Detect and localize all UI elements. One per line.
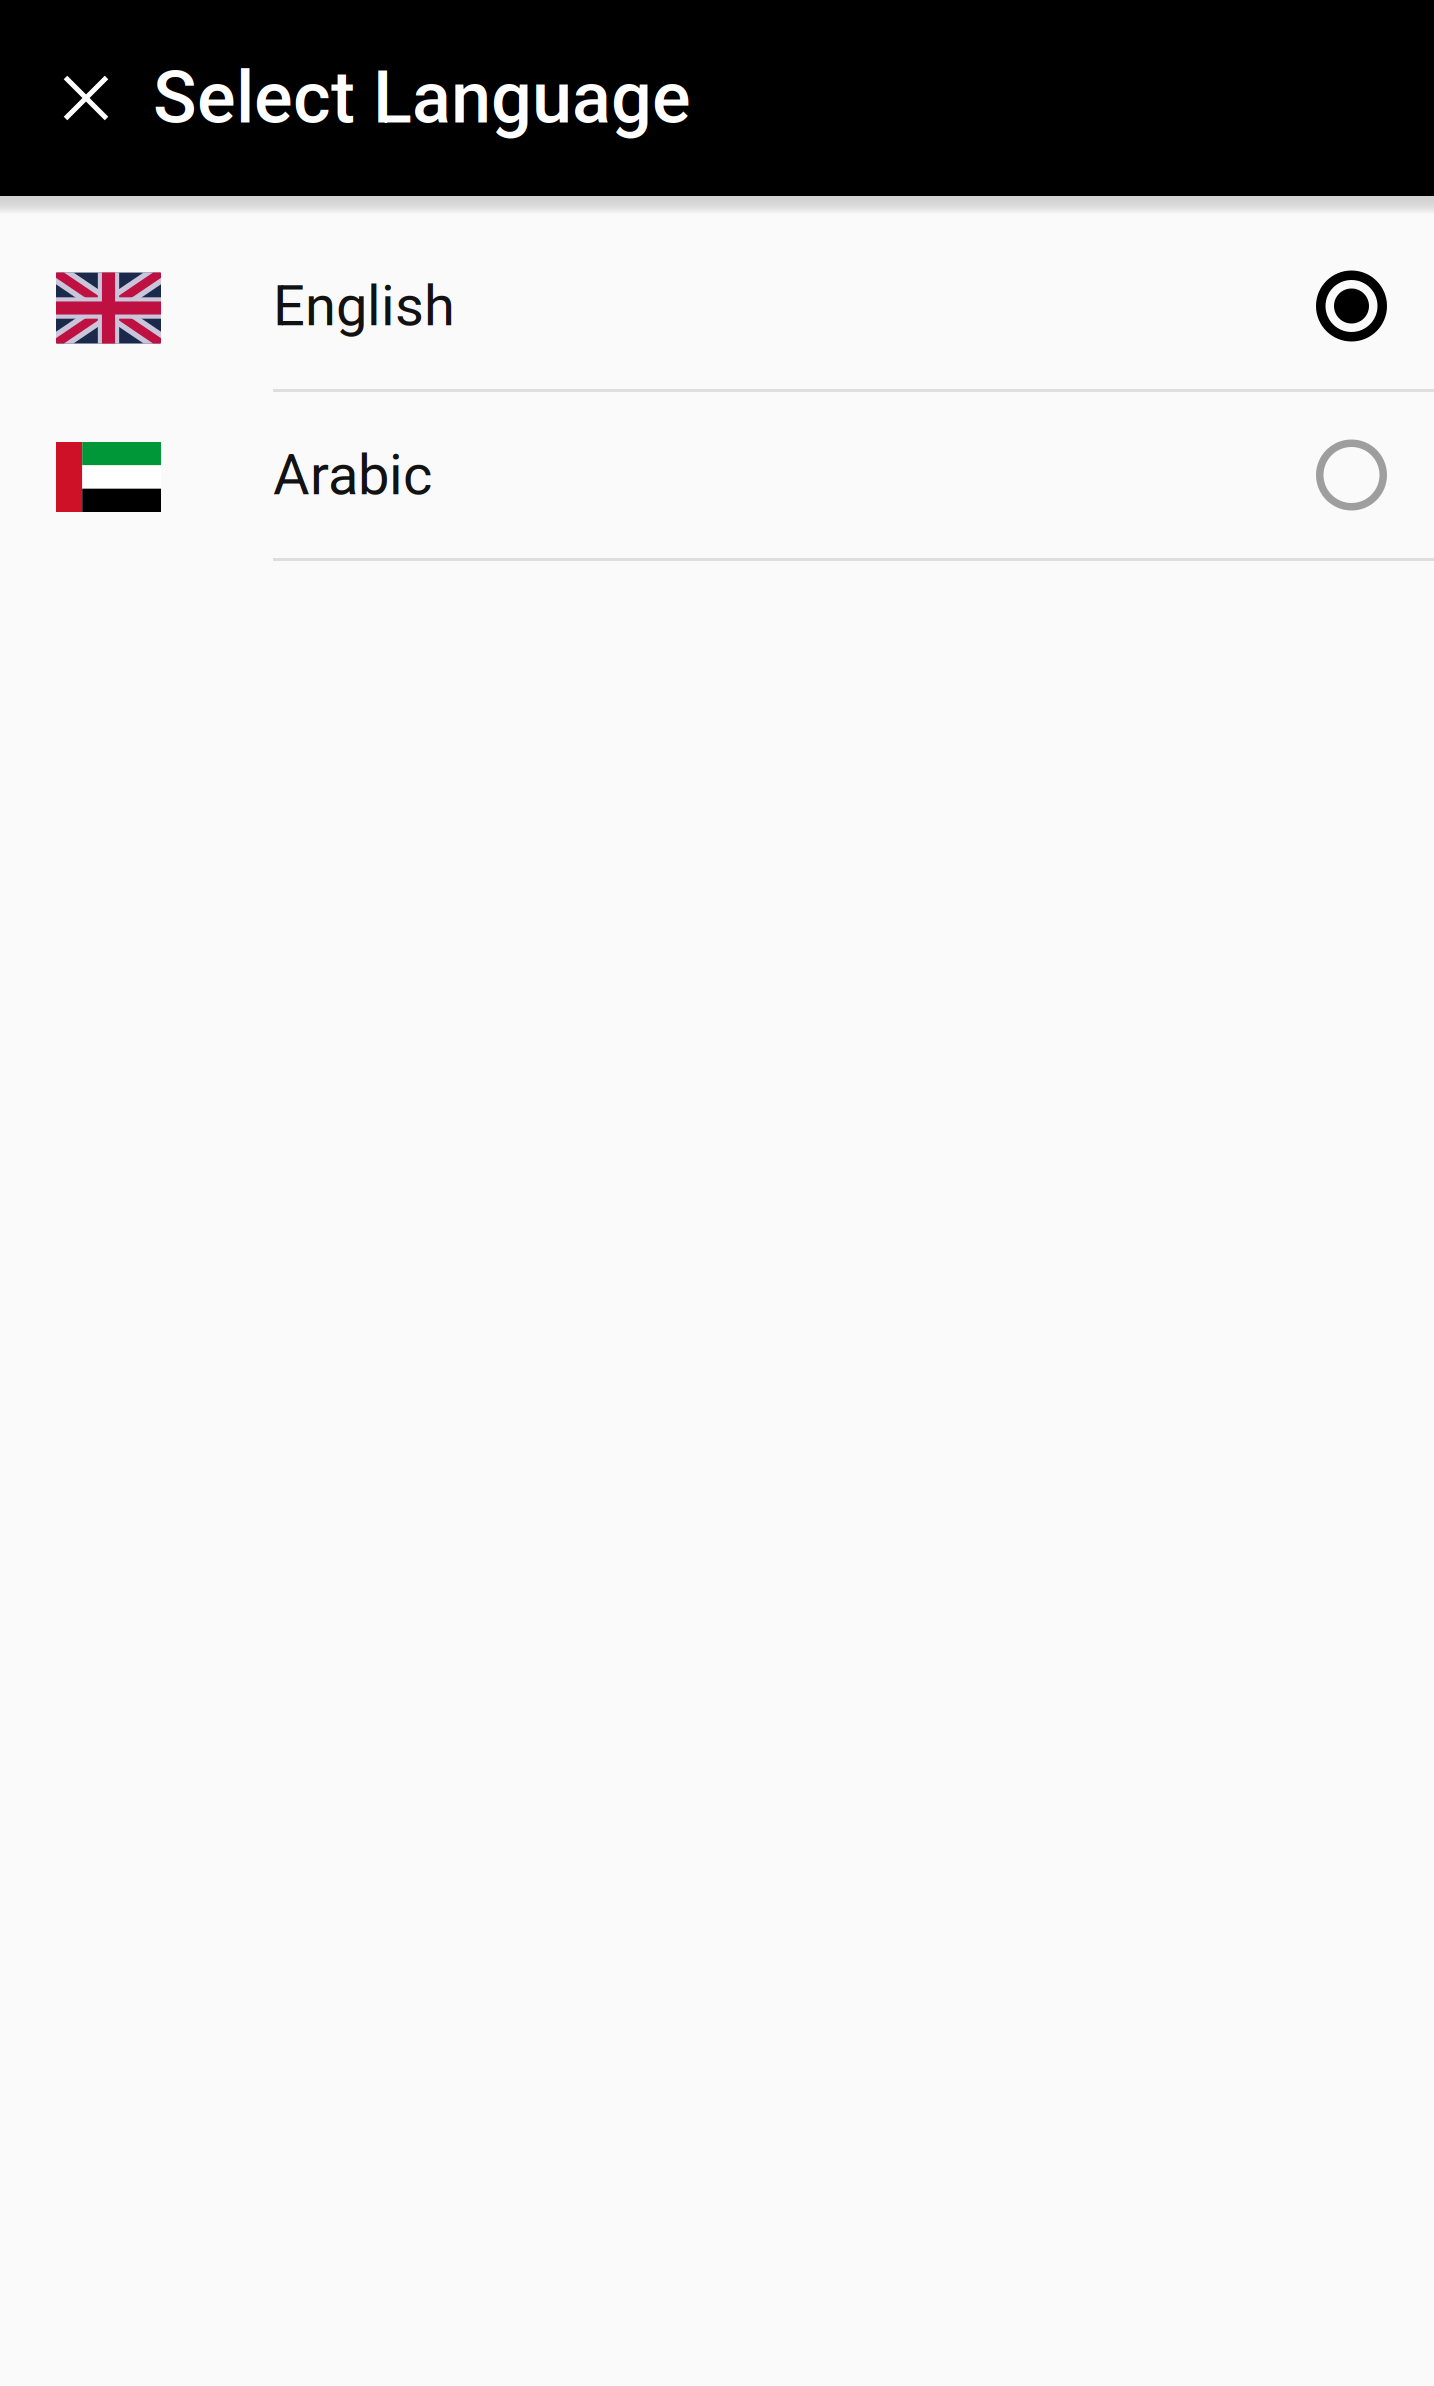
button[interactable]: Close [42,54,130,142]
staticText: Arabic [273,442,432,508]
staticText: English [273,273,455,339]
staticText: Select Language [153,56,691,140]
button[interactable]: Arabic [0,392,1434,561]
button[interactable]: English [0,223,1434,392]
